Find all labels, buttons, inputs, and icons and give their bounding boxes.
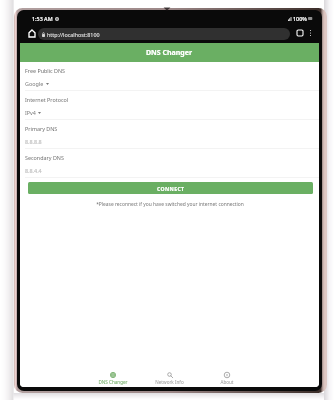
staticText: Google <box>25 80 44 87</box>
button[interactable]: CONNECT <box>28 182 313 194</box>
staticText: About <box>220 379 234 385</box>
button[interactable]: About <box>198 372 255 385</box>
button[interactable]: http://localhost:8100 <box>38 28 290 40</box>
staticText: CONNECT <box>157 185 185 192</box>
staticText: Free Public DNS <box>25 67 66 74</box>
staticText: Secondary DNS <box>25 154 64 161</box>
staticText: Internet Protocol <box>25 96 69 103</box>
staticText: DNS Changer <box>98 379 128 385</box>
button[interactable]: More options <box>304 27 316 39</box>
staticText: *Please reconnect if you have switched y… <box>96 201 244 208</box>
staticText: 100% <box>293 15 307 22</box>
button[interactable]: Home <box>26 27 38 39</box>
staticText: http://localhost:8100 <box>47 31 100 38</box>
button[interactable]: Tabs <box>294 27 306 39</box>
button[interactable]: Free Public DNS <box>20 62 319 91</box>
button[interactable]: Secondary DNS <box>20 149 319 178</box>
button[interactable]: Internet Protocol <box>20 91 319 120</box>
staticText: IPv4 <box>25 109 36 116</box>
button[interactable]: DNS Changer <box>84 372 141 385</box>
staticText: 8.8.8.8 <box>25 138 42 145</box>
staticText: Network Info <box>155 379 184 385</box>
staticText: DNS Changer <box>146 48 193 58</box>
staticText: 1:53 AM <box>32 15 53 22</box>
button[interactable]: Network Info <box>141 372 198 385</box>
staticText: Primary DNS <box>25 125 58 132</box>
staticText: 8.8.4.4 <box>25 167 42 174</box>
button[interactable]: Primary DNS <box>20 120 319 149</box>
